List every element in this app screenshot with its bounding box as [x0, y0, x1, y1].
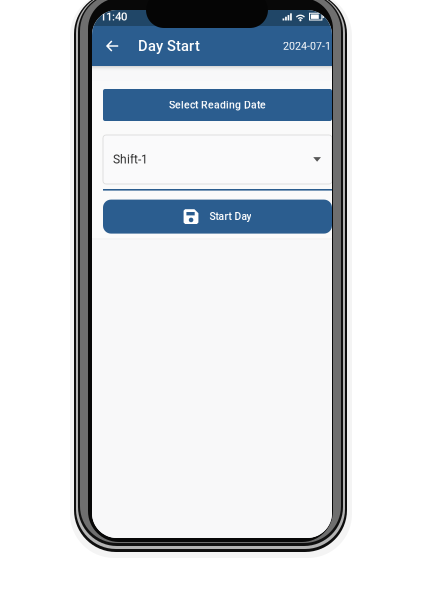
staticText: Start Day [209, 211, 251, 223]
button[interactable]: Start Day [103, 200, 332, 234]
staticText: Select Reading Date [169, 99, 266, 111]
staticText: Shift-1 [113, 152, 148, 167]
button[interactable]: Back [101, 28, 124, 64]
staticText: 11:40 [100, 10, 127, 23]
button[interactable]: Select Reading Date [103, 89, 332, 121]
staticText: Day Start [138, 37, 200, 55]
staticText: 2024-07-1 [283, 40, 331, 52]
button[interactable]: Shift-1 [103, 135, 332, 184]
